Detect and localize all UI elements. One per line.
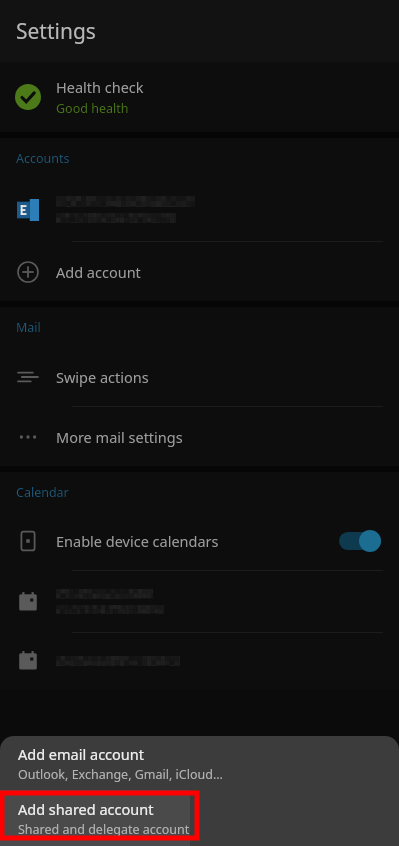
other: Enable device calendars <box>339 530 381 552</box>
button[interactable] <box>0 178 399 241</box>
staticText: Good health <box>56 100 129 117</box>
staticText: More mail settings <box>56 427 183 447</box>
staticText: Add shared account <box>18 799 154 819</box>
button[interactable]: Add account <box>0 242 399 301</box>
button[interactable] <box>0 571 399 632</box>
staticText: Mail <box>16 319 41 336</box>
button[interactable]: Enable device calendars <box>0 512 399 570</box>
staticText: Shared and delegate account <box>18 821 190 838</box>
staticText: Add email account <box>18 744 144 764</box>
button[interactable]: Add email account <box>0 736 399 790</box>
staticText: Calendar <box>16 484 69 501</box>
staticText: Settings <box>16 17 96 46</box>
button[interactable] <box>0 633 399 689</box>
other: Add account <box>17 261 39 283</box>
staticText: Swipe actions <box>56 367 149 387</box>
staticText: Add account <box>56 262 141 282</box>
staticText: Health check <box>56 77 144 97</box>
button[interactable]: Add shared account <box>0 790 190 846</box>
staticText: Enable device calendars <box>56 531 219 551</box>
staticText: Outlook, Exchange, Gmail, iCloud... <box>18 766 223 783</box>
button[interactable]: More mail settings <box>0 407 399 466</box>
button[interactable]: Swipe actions <box>0 347 399 406</box>
other: More mail settings <box>17 426 39 448</box>
staticText: Accounts <box>16 150 70 167</box>
button[interactable]: Health check <box>0 62 399 132</box>
